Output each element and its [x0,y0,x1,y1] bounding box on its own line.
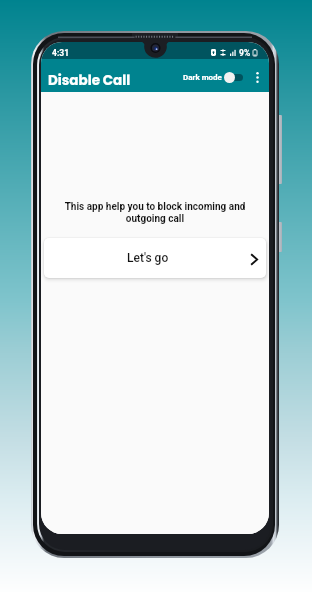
staticText: 9% [239,48,251,58]
staticText: This app help you to block incoming and … [61,201,249,225]
button[interactable]: Let's go [44,238,266,278]
staticText: Dark mode [183,73,222,82]
staticText: Let's go [127,251,169,265]
button[interactable]: More options [251,67,264,87]
staticText: Disable Call [48,71,131,90]
button[interactable]: Dark mode [183,71,243,83]
staticText: 4:31 [52,48,70,58]
